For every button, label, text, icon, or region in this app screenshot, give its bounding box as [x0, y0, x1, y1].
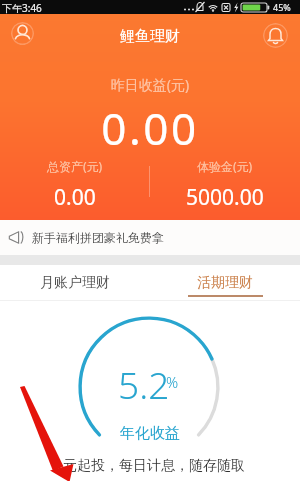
staticText: 0.00: [54, 183, 96, 212]
staticText: 活期理财: [197, 274, 253, 292]
staticText: 1元起投，每日计息，随存随取: [0, 455, 300, 474]
staticText: 5000.00: [186, 183, 264, 212]
button[interactable]: 月账户理财: [0, 265, 150, 301]
staticText: %: [166, 372, 179, 392]
staticText: 体验金(元): [197, 158, 253, 174]
button[interactable]: Notifications: [263, 23, 288, 48]
staticText: 45%: [273, 1, 291, 13]
staticText: 总资产(元): [47, 158, 103, 174]
staticText: 月账户理财: [40, 274, 110, 292]
staticText: 鲤鱼理财: [120, 27, 180, 46]
button[interactable]: 新手福利拼团豪礼免费拿: [0, 220, 300, 255]
staticText: 5.2: [118, 359, 170, 409]
staticText: 昨日收益(元): [0, 75, 300, 94]
staticText: 年化收益: [0, 424, 300, 443]
staticText: 新手福利拼团豪礼免费拿: [32, 230, 164, 245]
staticText: 下午3:46: [2, 1, 42, 15]
staticText: 0.00: [0, 98, 300, 158]
button[interactable]: 活期理财: [150, 265, 300, 301]
button[interactable]: Profile: [11, 22, 34, 45]
